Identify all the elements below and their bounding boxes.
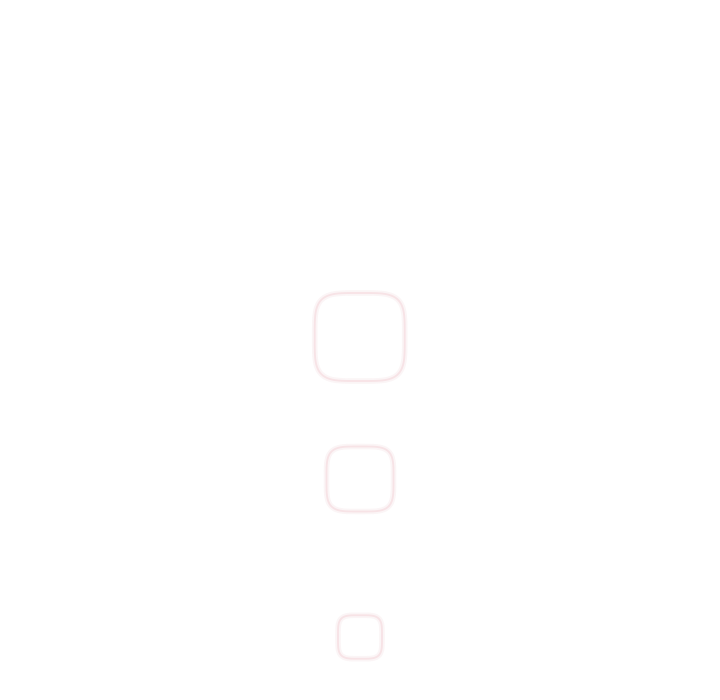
button[interactable]: Small rounded square	[338, 615, 382, 659]
button[interactable]: Medium rounded square	[326, 446, 393, 511]
button[interactable]: Large rounded square	[315, 293, 405, 381]
